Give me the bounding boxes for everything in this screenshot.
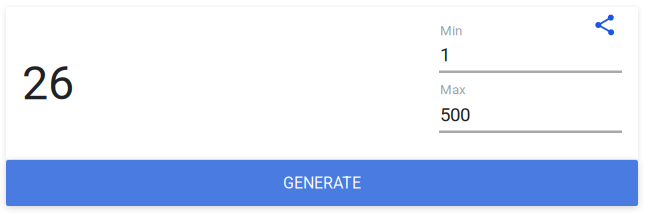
staticText: Max — [440, 82, 466, 98]
staticText: Min — [440, 23, 462, 39]
button[interactable]: Share — [591, 11, 621, 41]
staticText: 500 — [440, 104, 470, 126]
button[interactable]: GENERATE — [6, 160, 638, 206]
staticText: 26 — [22, 56, 74, 111]
staticText: 1 — [440, 44, 450, 66]
staticText: GENERATE — [283, 174, 361, 192]
